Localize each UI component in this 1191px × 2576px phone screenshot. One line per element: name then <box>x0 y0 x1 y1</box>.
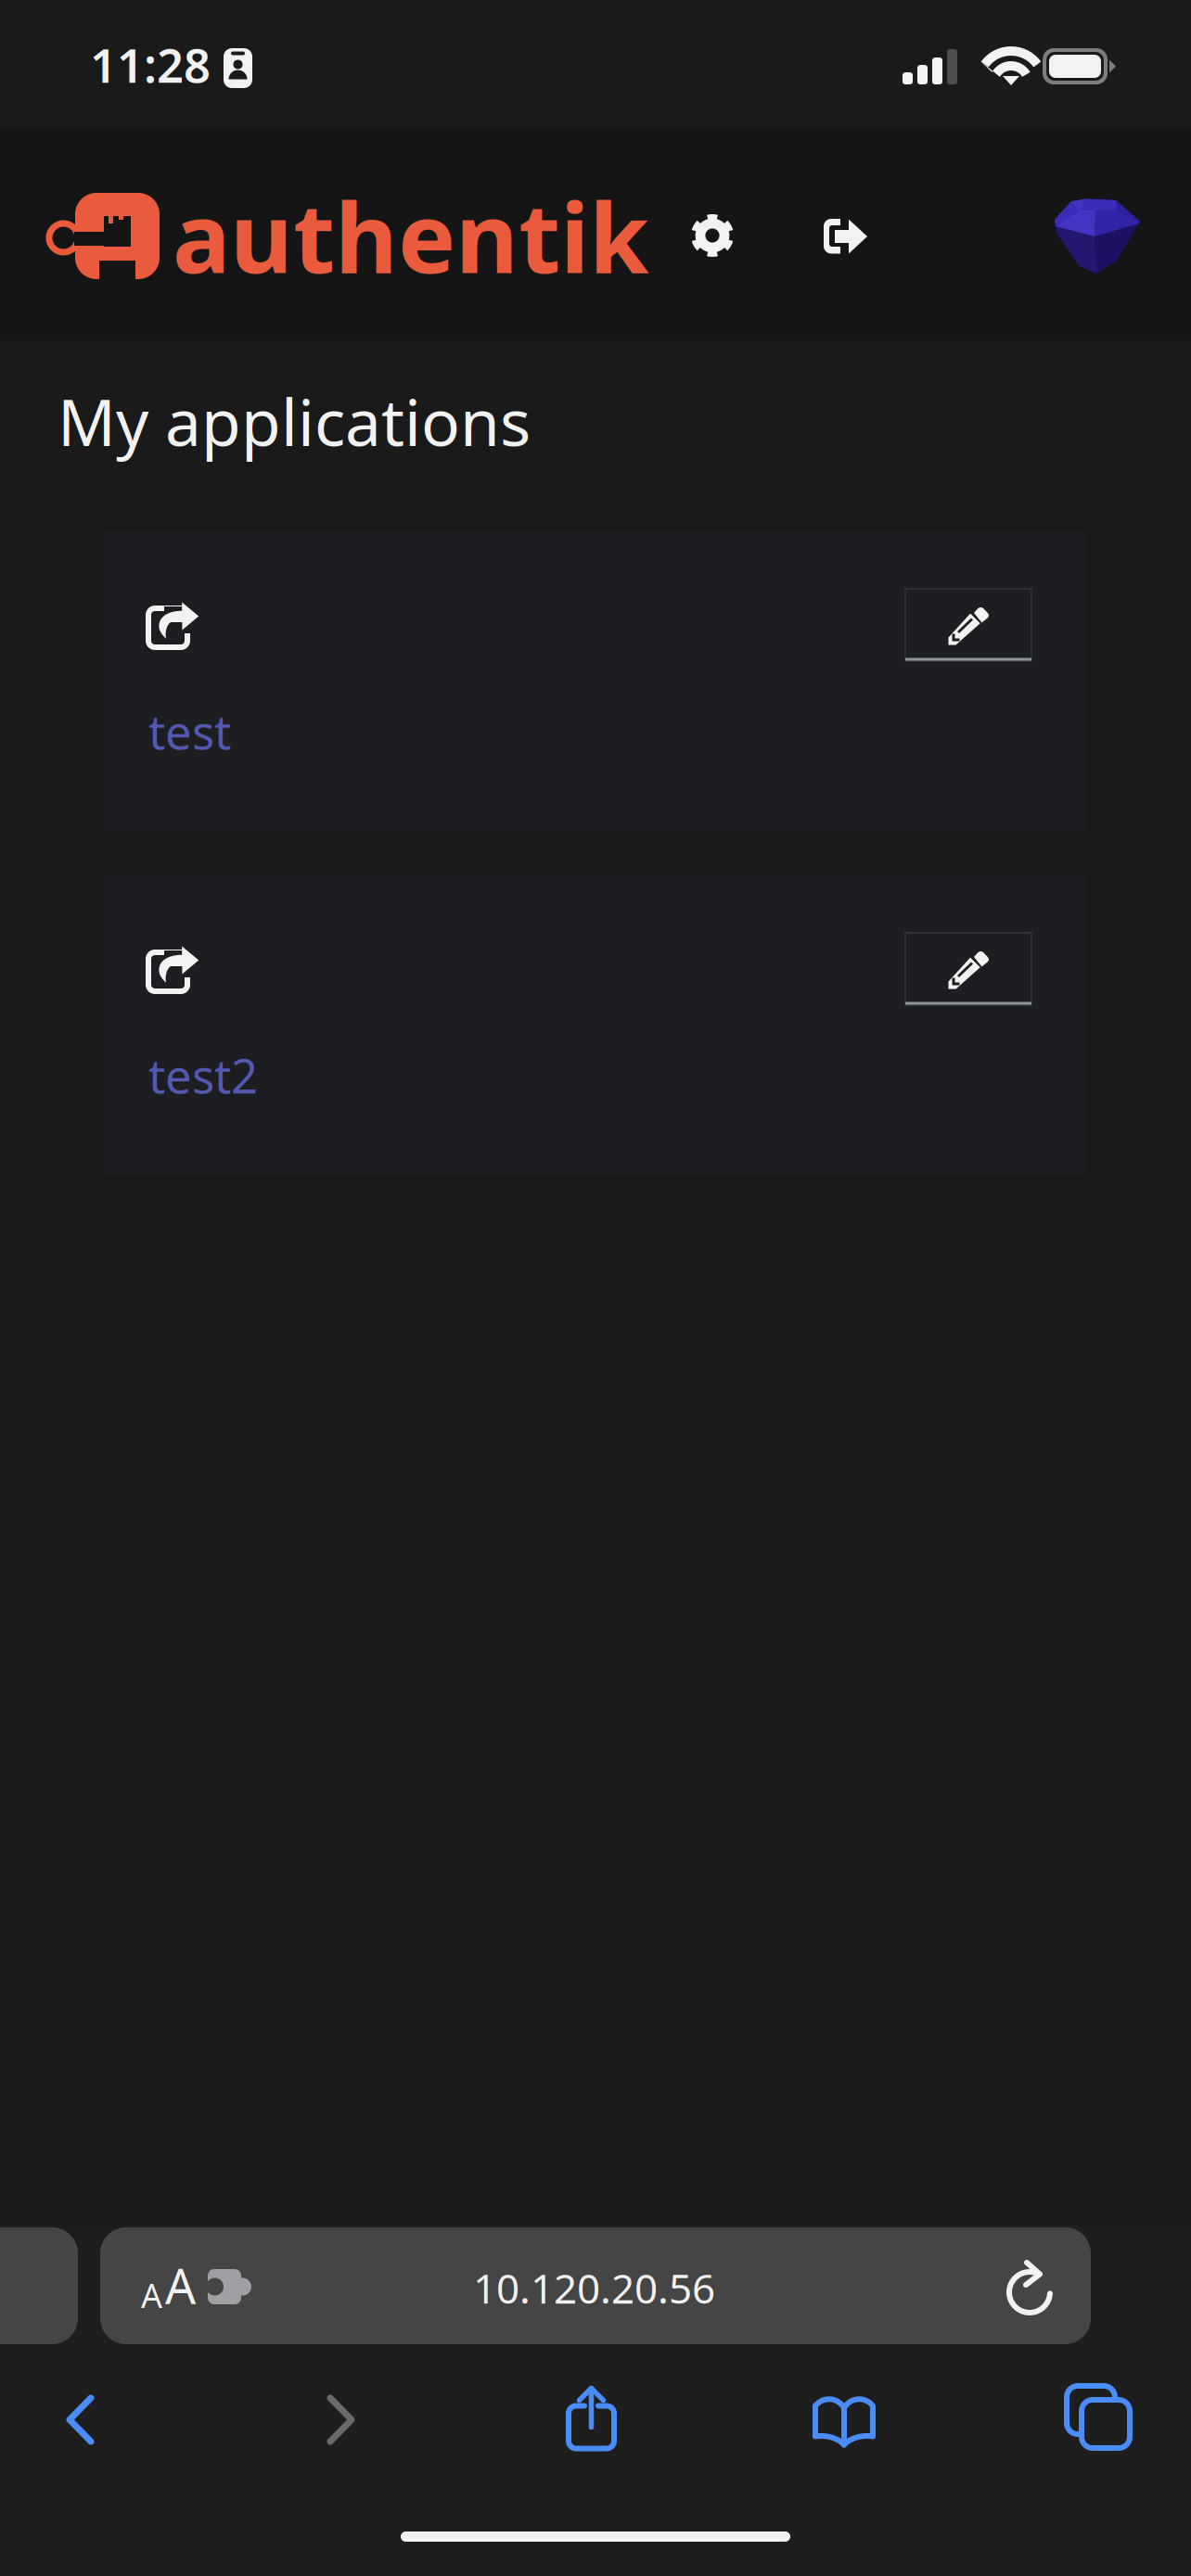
button[interactable]: Settings <box>691 214 734 257</box>
button[interactable]: Sign out <box>824 219 867 254</box>
staticText: authentik <box>173 172 648 300</box>
button[interactable]: Bookmarks <box>775 2363 914 2479</box>
button[interactable]: test <box>104 530 1087 831</box>
staticText: A <box>141 2273 162 2317</box>
button[interactable]: Share <box>528 2360 655 2476</box>
button[interactable]: Account <box>1055 198 1140 274</box>
button[interactable]: Edit test2 <box>905 933 1031 1005</box>
button[interactable]: test2 <box>104 874 1087 1175</box>
staticText: test2 <box>148 1044 258 1107</box>
staticText: 11:28 <box>90 33 211 96</box>
button[interactable]: Back <box>24 2362 136 2478</box>
button[interactable]: Forward <box>285 2362 397 2478</box>
staticText: 10.120.20.56 <box>473 2261 715 2315</box>
staticText: A <box>165 2253 196 2317</box>
button[interactable]: Edit test <box>905 589 1031 661</box>
staticText: My applications <box>58 378 531 464</box>
staticText: test <box>148 700 231 763</box>
button[interactable]: A <box>100 2227 1091 2344</box>
button[interactable]: Tabs <box>1030 2359 1167 2475</box>
